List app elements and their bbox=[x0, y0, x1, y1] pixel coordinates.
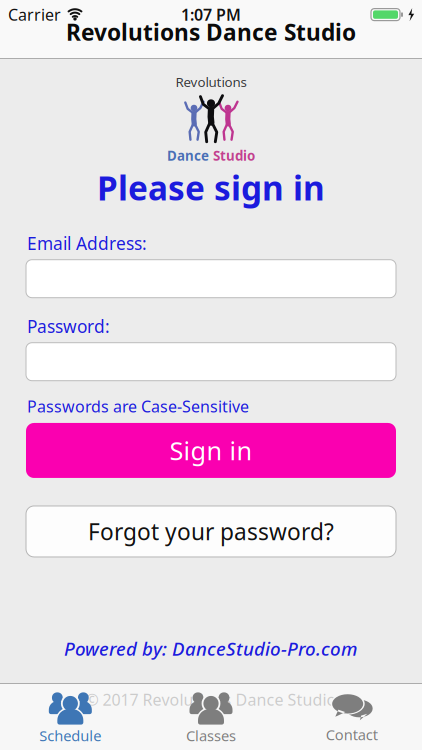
staticText: Sign in bbox=[169, 434, 252, 467]
staticText: 1:07 PM bbox=[181, 4, 241, 25]
staticText: Email Address: bbox=[27, 232, 147, 255]
button[interactable]: Classes bbox=[141, 691, 281, 745]
staticText: Revolutions Dance Studio bbox=[66, 17, 356, 47]
button[interactable]: Contact bbox=[281, 692, 422, 744]
staticText: Revolutions bbox=[175, 73, 246, 91]
staticText: Dance bbox=[167, 147, 209, 164]
staticText: Forgot your password? bbox=[88, 516, 334, 546]
button[interactable]: Sign in bbox=[26, 423, 396, 478]
staticText: Classes bbox=[186, 726, 236, 745]
staticText: © 2017 Revolutions Dance Studio bbox=[85, 689, 336, 710]
staticText: Schedule bbox=[39, 726, 101, 745]
staticText: Carrier bbox=[8, 4, 61, 25]
staticText: Studio bbox=[213, 147, 255, 164]
button[interactable]: Schedule bbox=[0, 691, 141, 745]
staticText: Please sign in bbox=[97, 165, 325, 210]
staticText: Passwords are Case-Sensitive bbox=[27, 396, 249, 417]
button[interactable]: Powered by: DanceStudio-Pro.com bbox=[64, 636, 358, 661]
staticText: Contact bbox=[326, 725, 378, 744]
button[interactable]: Forgot your password? bbox=[26, 506, 396, 557]
staticText: Powered by: DanceStudio-Pro.com bbox=[64, 636, 358, 661]
staticText: Password: bbox=[27, 315, 110, 338]
